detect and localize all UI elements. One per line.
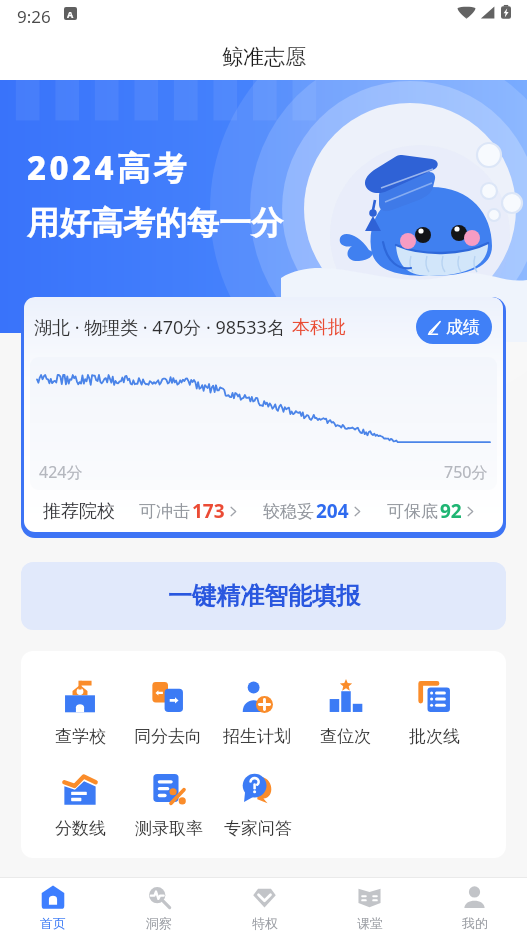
- staticText: 92: [440, 498, 462, 524]
- button[interactable]: 查学校: [36, 678, 124, 749]
- button[interactable]: 一键精准智能填报: [21, 562, 506, 630]
- staticText: 2024高考: [27, 145, 190, 190]
- staticText: 湖北 · 物理类 · 470分 · 98533名: [34, 315, 285, 340]
- button[interactable]: 分数线: [36, 770, 124, 841]
- staticText: 批次线: [409, 726, 460, 747]
- staticText: 专家问答: [224, 818, 292, 839]
- button[interactable]: 可冲击: [139, 498, 239, 524]
- staticText: 成绩: [446, 317, 480, 338]
- button[interactable]: 特权: [212, 878, 317, 938]
- button[interactable]: 首页: [0, 878, 106, 938]
- staticText: 特权: [252, 915, 278, 931]
- button[interactable]: 湖北 · 物理类 · 470分 · 98533名: [24, 297, 503, 532]
- staticText: A: [67, 8, 74, 20]
- staticText: 招生计划: [223, 726, 291, 747]
- staticText: 本科批: [292, 316, 346, 339]
- staticText: 750分: [444, 461, 488, 483]
- button[interactable]: 查位次: [301, 678, 390, 749]
- staticText: 较稳妥: [263, 501, 314, 522]
- button[interactable]: 我的: [422, 878, 527, 938]
- staticText: 用好高考的每一分: [27, 203, 283, 243]
- staticText: 课堂: [357, 915, 383, 931]
- staticText: 首页: [40, 915, 66, 931]
- button[interactable]: 洞察: [106, 878, 212, 938]
- staticText: 9:26: [17, 5, 51, 28]
- staticText: 424分: [39, 461, 83, 483]
- staticText: 查位次: [320, 726, 371, 747]
- staticText: 可冲击: [139, 501, 190, 522]
- staticText: 可保底: [387, 501, 438, 522]
- button[interactable]: 成绩: [416, 310, 492, 344]
- staticText: 推荐院校: [43, 500, 115, 523]
- staticText: 204: [316, 498, 349, 524]
- button[interactable]: 专家问答: [213, 770, 302, 841]
- staticText: 我的: [462, 915, 488, 931]
- staticText: 一键精准智能填报: [168, 581, 360, 611]
- staticText: 测录取率: [135, 818, 203, 839]
- button[interactable]: 招生计划: [212, 678, 301, 749]
- staticText: 查学校: [55, 726, 106, 747]
- button[interactable]: 批次线: [390, 678, 479, 749]
- button[interactable]: 较稳妥: [263, 498, 363, 524]
- staticText: 鲸准志愿: [222, 44, 306, 70]
- staticText: 同分去向: [134, 726, 202, 747]
- button[interactable]: 测录取率: [124, 770, 213, 841]
- button[interactable]: 可保底: [387, 498, 476, 524]
- button[interactable]: 同分去向: [124, 678, 212, 749]
- staticText: 分数线: [55, 818, 106, 839]
- button[interactable]: 课堂: [317, 878, 422, 938]
- staticText: 173: [192, 498, 225, 524]
- staticText: 洞察: [146, 915, 172, 931]
